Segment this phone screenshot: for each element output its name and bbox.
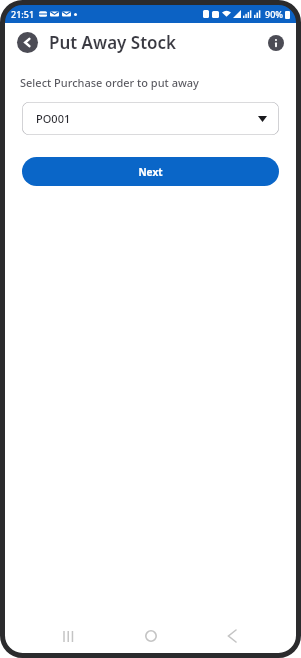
staticText: Next xyxy=(138,165,163,179)
button[interactable]: Home xyxy=(134,619,168,653)
button[interactable]: Information xyxy=(268,35,284,51)
button[interactable]: Back xyxy=(215,619,249,653)
staticText: PO001 xyxy=(36,111,71,126)
staticText: 21:51 xyxy=(11,8,35,20)
button[interactable]: PO001 xyxy=(22,102,279,135)
button[interactable]: Next xyxy=(22,157,279,186)
staticText: 90% xyxy=(265,8,283,20)
staticText: Select Purchase order to put away xyxy=(20,75,199,90)
button[interactable]: Back xyxy=(17,32,38,53)
button[interactable]: Recents xyxy=(52,619,86,653)
staticText: Put Away Stock xyxy=(49,31,177,54)
